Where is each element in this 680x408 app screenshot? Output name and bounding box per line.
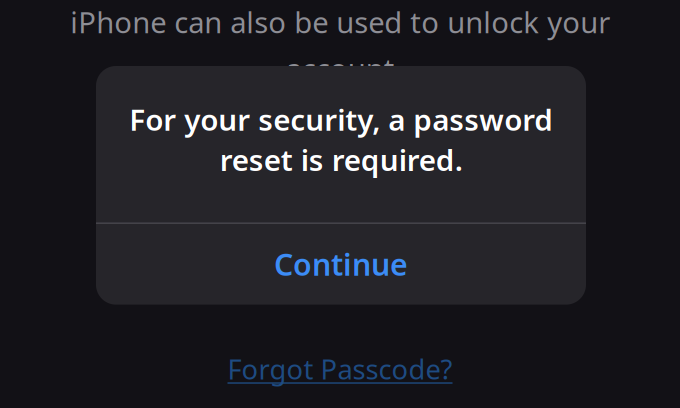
button[interactable]: Continue xyxy=(96,224,586,305)
staticText: For your security, a password reset is r… xyxy=(129,99,553,180)
staticText: Continue xyxy=(274,243,408,285)
staticText: iPhone can also be used to unlock your a… xyxy=(70,2,610,88)
button[interactable]: Forgot Passcode? xyxy=(190,347,490,391)
staticText: Forgot Passcode? xyxy=(227,350,452,388)
